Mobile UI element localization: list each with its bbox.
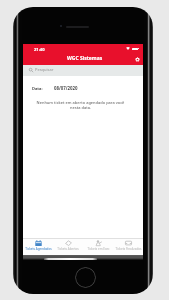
button[interactable]: Tickets Agendados bbox=[23, 239, 53, 251]
button[interactable]: Tickets Finalizados bbox=[113, 239, 143, 251]
staticText: Pesquisar bbox=[35, 67, 54, 72]
staticText: 21:40 bbox=[34, 47, 45, 53]
staticText: Tickets em Exec bbox=[87, 247, 110, 251]
button[interactable]: Tickets Abertos bbox=[53, 239, 83, 251]
button[interactable]: Tickets em Exec bbox=[83, 239, 113, 251]
staticText: Tickets Agendados bbox=[25, 247, 52, 251]
staticText: Tickets Abertos bbox=[57, 247, 79, 251]
staticText: Nenhum ticket em aberto agendado para vo… bbox=[33, 100, 128, 110]
staticText: Data: bbox=[32, 86, 43, 91]
staticText: WGC Sistemas bbox=[67, 55, 103, 62]
staticText: Tickets Finalizados bbox=[115, 247, 142, 251]
button[interactable]: Settings bbox=[132, 54, 143, 65]
staticText: 08/07/2020 bbox=[54, 85, 78, 91]
